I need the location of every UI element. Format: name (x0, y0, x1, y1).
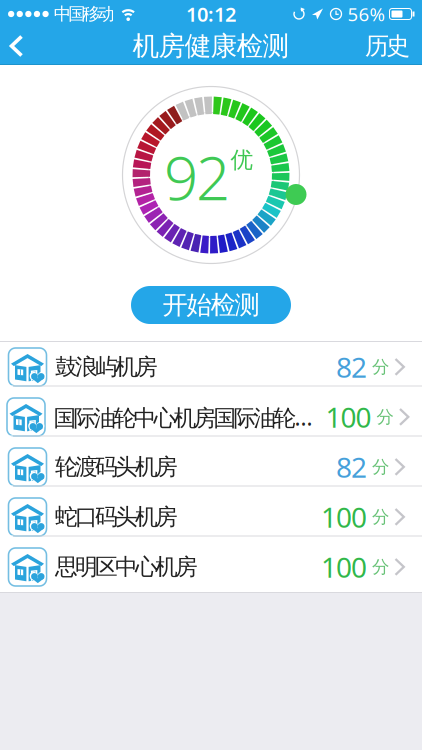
staticText: 历史 (365, 31, 410, 61)
button[interactable]: 轮渡码头机房 (0, 442, 422, 492)
staticText: 思明区中心机房 (55, 553, 198, 581)
staticText: 中国移动 (54, 3, 114, 25)
staticText: 蛇口码头机房 (55, 503, 178, 531)
staticText: 优 (230, 146, 253, 174)
staticText: 100 (321, 498, 367, 536)
staticText: 10:12 (186, 1, 236, 27)
staticText: 82 (336, 348, 367, 386)
button[interactable]: 蛇口码头机房 (0, 492, 422, 542)
staticText: 分 (372, 456, 389, 478)
staticText: 分 (372, 356, 389, 378)
button[interactable]: 历史 (365, 23, 422, 69)
staticText: 分 (376, 406, 393, 428)
staticText: 100 (321, 548, 367, 586)
button[interactable]: 开始检测 (131, 286, 291, 324)
button[interactable]: 鼓浪屿机房 (0, 342, 422, 392)
staticText: 82 (336, 448, 367, 486)
staticText: 100 (325, 398, 371, 436)
staticText: 轮渡码头机房 (55, 453, 178, 481)
staticText: 92 (164, 137, 230, 217)
button[interactable]: Back (0, 27, 24, 64)
staticText: 分 (372, 506, 389, 528)
staticText: 国际油轮中心机房国际油轮国... (53, 402, 321, 432)
staticText: 鼓浪屿机房 (55, 353, 158, 381)
staticText: 机房健康检测 (132, 30, 289, 62)
button[interactable]: 国际油轮中心机房国际油轮国... (0, 392, 422, 442)
staticText: 开始检测 (162, 289, 259, 320)
staticText: 56% (347, 2, 385, 26)
staticText: 分 (372, 556, 389, 578)
button[interactable]: 思明区中心机房 (0, 542, 422, 592)
